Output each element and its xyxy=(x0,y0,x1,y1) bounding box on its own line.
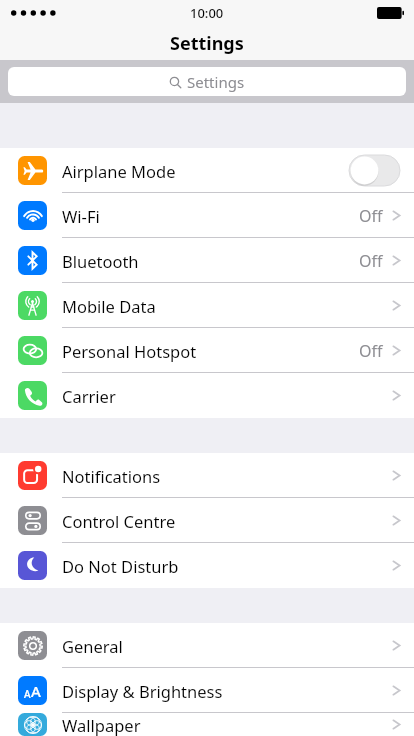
staticText: Notifications xyxy=(62,465,392,487)
button[interactable]: Bluetooth xyxy=(0,238,414,283)
button[interactable]: General xyxy=(0,623,414,668)
button[interactable]: A xyxy=(0,668,414,713)
button[interactable]: Personal Hotspot xyxy=(0,328,414,373)
button[interactable]: Wallpaper xyxy=(0,713,414,736)
staticText: Wallpaper xyxy=(62,714,392,736)
staticText: Personal Hotspot xyxy=(62,340,359,362)
button[interactable]: Airplane Mode toggle, off xyxy=(349,155,400,186)
staticText: A xyxy=(24,687,31,701)
button[interactable]: Carrier xyxy=(0,373,414,418)
button[interactable]: Mobile Data xyxy=(0,283,414,328)
button[interactable]: Settings xyxy=(8,67,406,96)
staticText: Airplane Mode xyxy=(62,160,349,182)
staticText: Do Not Disturb xyxy=(62,555,392,577)
staticText: Display & Brightness xyxy=(62,680,392,702)
button[interactable]: Notifications xyxy=(0,453,414,498)
staticText: Mobile Data xyxy=(62,295,392,317)
staticText: Off xyxy=(359,340,383,362)
button[interactable]: Wi-Fi xyxy=(0,193,414,238)
staticText: A xyxy=(31,681,41,701)
staticText: 10:00 xyxy=(190,4,224,22)
staticText: Settings xyxy=(187,72,245,92)
button[interactable]: Do Not Disturb xyxy=(0,543,414,588)
staticText: Bluetooth xyxy=(62,250,359,272)
button[interactable]: Airplane Mode xyxy=(0,148,414,193)
staticText: Carrier xyxy=(62,385,392,407)
staticText: Control Centre xyxy=(62,510,392,532)
staticText: Off xyxy=(359,205,383,227)
button[interactable]: Control Centre xyxy=(0,498,414,543)
staticText: Settings xyxy=(170,31,244,56)
staticText: Off xyxy=(359,250,383,272)
staticText: General xyxy=(62,635,392,657)
staticText: Wi-Fi xyxy=(62,205,359,227)
